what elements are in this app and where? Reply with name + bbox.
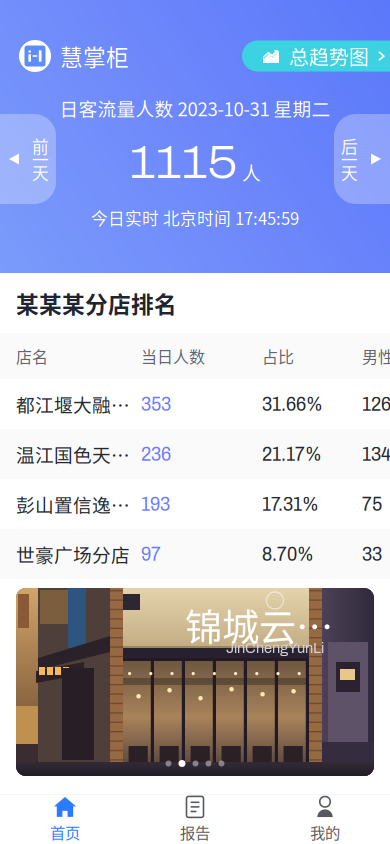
staticText: 总趋势图 [289, 41, 369, 70]
staticText: 锦城云里酒店 [185, 598, 365, 652]
staticText: 某某某分店排名 [16, 287, 177, 319]
staticText: 21.17% [262, 443, 322, 465]
staticText: 353 [141, 393, 171, 415]
staticText: 当日人数 [141, 344, 205, 368]
staticText: 都江堰大融城... [16, 390, 141, 417]
staticText: 一 [341, 147, 358, 171]
staticText: 8.70% [262, 543, 314, 565]
staticText: 世豪广场分店 [16, 540, 130, 567]
staticText: 一 [32, 147, 49, 171]
button[interactable]: 温江国色天香店 [0, 429, 390, 479]
staticText: 占比 [262, 344, 294, 368]
button[interactable]: 世豪广场分店 [0, 529, 390, 579]
staticText: 慧掌柜 [60, 40, 129, 72]
staticText: 今日实时 北京时间 17:45:59 [91, 206, 299, 230]
staticText: 17.31% [262, 493, 319, 515]
staticText: 人 [242, 159, 261, 186]
staticText: 前 [32, 134, 49, 158]
button[interactable]: 慧掌柜 [19, 40, 129, 72]
staticText: 温江国色天香店 [16, 440, 141, 467]
button[interactable]: 彭山置信逸都... [0, 479, 390, 529]
staticText: 134 [362, 443, 390, 465]
staticText: 236 [141, 443, 171, 465]
staticText: JinChengYunLi [226, 640, 324, 656]
staticText: 31.66% [262, 393, 323, 415]
button[interactable]: 总趋势图 [220, 40, 390, 71]
staticText: 日客流量人数 2023-10-31 星期二 [59, 94, 330, 121]
staticText: 男性 [362, 344, 390, 368]
staticText: 首页 [50, 821, 80, 843]
button[interactable]: 后一天 [334, 114, 390, 204]
button[interactable]: 首页 [0, 795, 130, 844]
staticText: 天 [32, 160, 49, 184]
button[interactable]: 我的 [260, 795, 390, 844]
staticText: 1115 [129, 137, 237, 188]
staticText: 报告 [180, 821, 210, 843]
staticText: 126 [362, 393, 390, 415]
staticText: 我的 [310, 821, 340, 843]
button[interactable]: 都江堰大融城... [0, 379, 390, 429]
staticText: 33 [362, 543, 382, 565]
staticText: 97 [141, 543, 161, 565]
staticText: 75 [362, 493, 382, 515]
staticText: 彭山置信逸都... [16, 490, 141, 517]
staticText: 店名 [16, 344, 48, 368]
button[interactable]: 前一天 [0, 114, 56, 204]
button[interactable]: 报告 [130, 795, 260, 844]
staticText: 193 [141, 493, 170, 515]
staticText: 后 [341, 134, 358, 158]
staticText: 天 [341, 160, 358, 184]
button[interactable]: 锦城云里酒店 [16, 588, 374, 776]
